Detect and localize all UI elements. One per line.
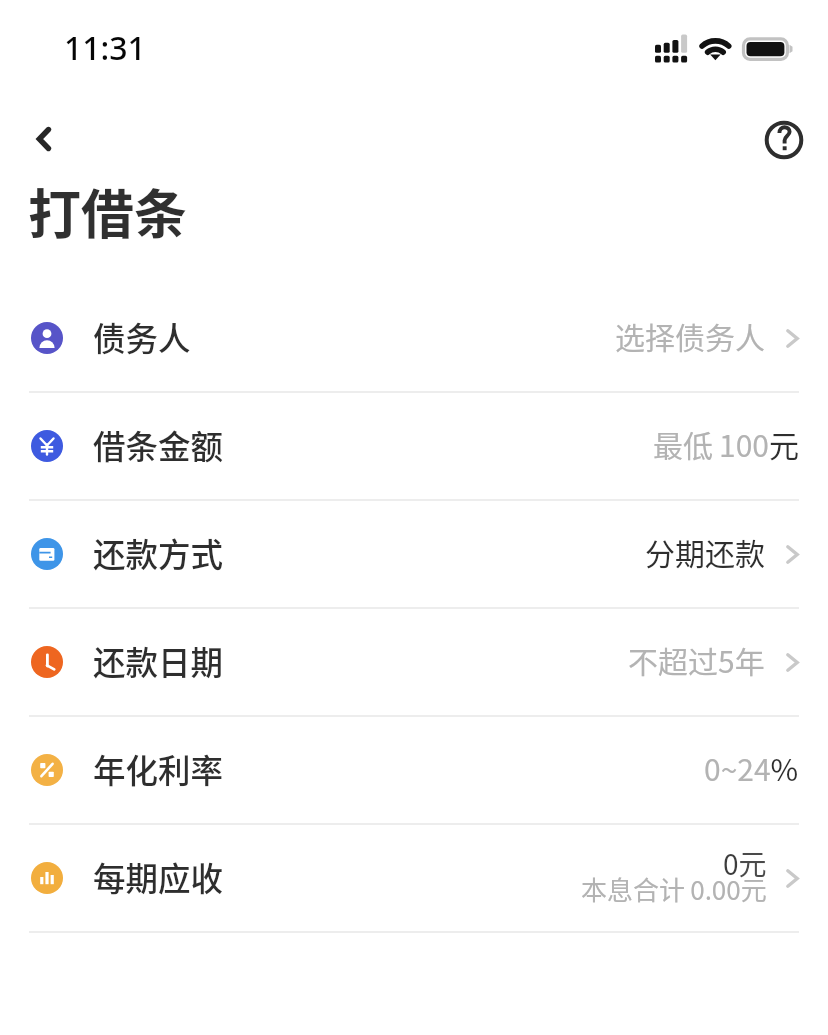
staticText: 还款日期 [93, 637, 224, 684]
staticText: 选择债务人 [615, 314, 765, 357]
button[interactable]: 借条金额 [0, 393, 828, 499]
button[interactable]: 年化利率 [0, 717, 828, 823]
staticText: 打借条 [28, 173, 187, 250]
staticText: 最低 100元 [653, 422, 799, 465]
staticText: 11:31 [64, 26, 146, 70]
button[interactable]: 还款方式 [0, 501, 828, 607]
staticText: 每期应收 [93, 853, 224, 900]
staticText: 0~24% [704, 746, 799, 789]
button[interactable]: Back [8, 110, 68, 170]
button[interactable]: 还款日期 [0, 609, 828, 715]
staticText: 还款方式 [93, 529, 224, 576]
staticText: 分期还款 [645, 530, 765, 573]
button[interactable]: Help [754, 110, 814, 170]
staticText: 本息合计 0.00元 [581, 870, 767, 908]
button[interactable]: 每期应收 [0, 825, 828, 931]
staticText: 借条金额 [93, 421, 224, 468]
button[interactable]: 债务人 [0, 285, 828, 391]
staticText: 不超过5年 [628, 638, 765, 681]
staticText: 债务人 [93, 313, 191, 360]
staticText: 0元 [723, 843, 767, 884]
staticText: 年化利率 [93, 745, 224, 792]
